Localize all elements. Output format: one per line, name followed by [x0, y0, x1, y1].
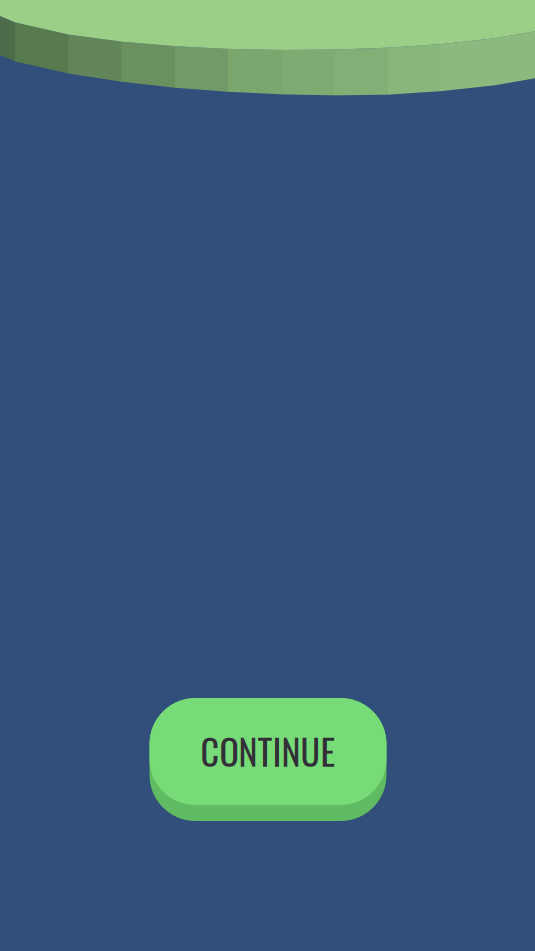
button[interactable]: CONTINUE [149, 698, 386, 821]
staticText: CONTINUE [200, 724, 335, 777]
